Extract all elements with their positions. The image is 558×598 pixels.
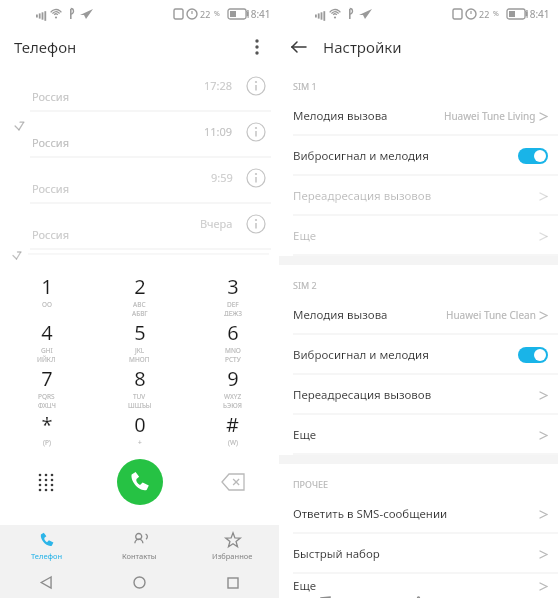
button[interactable]: Россия (0, 112, 279, 158)
button[interactable]: 5 (93, 316, 186, 362)
button[interactable]: Call details (243, 211, 269, 237)
button[interactable]: 8 (93, 362, 186, 408)
staticText: Мелодия вызова (293, 307, 388, 323)
staticText: Телефон (31, 551, 63, 561)
staticText: 11:09 (204, 124, 233, 139)
button[interactable]: Вибросигнал и мелодия (279, 136, 558, 176)
staticText: Ответить в SMS-сообщении (293, 506, 448, 522)
staticText: Вибросигнал и мелодия (293, 148, 429, 164)
button[interactable]: Back (283, 31, 315, 63)
staticText: Еще (293, 427, 317, 443)
button[interactable]: Call details (243, 73, 269, 99)
staticText: Россия (32, 227, 69, 242)
staticText: Россия (32, 135, 69, 150)
staticText: Настройки (323, 37, 402, 57)
button[interactable]: 9 (186, 362, 279, 408)
staticText: Еще (293, 228, 317, 244)
staticText: РСТУ (225, 355, 241, 362)
staticText: 0 (134, 411, 146, 438)
staticText: 1 (41, 273, 53, 300)
staticText: 17:28 (204, 78, 233, 93)
button[interactable]: Еще (279, 415, 558, 455)
staticText: JKL (135, 346, 145, 355)
staticText: 2 (134, 273, 146, 300)
button[interactable]: 1 (0, 270, 93, 316)
staticText: ОО (42, 300, 52, 309)
button[interactable]: 4 (0, 316, 93, 362)
staticText: Россия (32, 181, 69, 196)
staticText: 7 (41, 365, 53, 392)
button[interactable]: Toggle (518, 148, 548, 164)
staticText: Вчера (200, 216, 233, 231)
staticText: 4 (41, 319, 53, 346)
button[interactable]: Еще (279, 216, 558, 256)
staticText: 18:41 (524, 7, 550, 21)
button[interactable]: Call details (243, 119, 269, 145)
button[interactable]: Россия (0, 158, 279, 204)
button[interactable]: More options (245, 30, 279, 64)
staticText: 6 (227, 319, 239, 346)
button[interactable]: Быстрый набор (279, 534, 558, 574)
staticText: 9:59 (211, 170, 233, 185)
staticText: АБВГ (132, 309, 148, 316)
staticText: * (41, 411, 53, 438)
button[interactable]: Toggle (518, 347, 548, 363)
button[interactable]: * (0, 408, 93, 454)
button[interactable]: 6 (186, 316, 279, 362)
button[interactable]: Телефон (0, 525, 93, 567)
button[interactable]: Контакты (93, 525, 186, 567)
button[interactable]: Home (93, 567, 186, 598)
button[interactable]: Мелодия вызова (279, 295, 558, 335)
button[interactable]: Recents (186, 567, 279, 598)
button[interactable]: 7 (0, 362, 93, 408)
staticText: Вибросигнал и мелодия (293, 347, 429, 363)
staticText: Телефон (14, 37, 77, 57)
button[interactable]: Back (0, 567, 93, 598)
button[interactable]: 2 (93, 270, 186, 316)
staticText: ДЕЖЗ (224, 309, 242, 316)
button[interactable]: Переадресация вызовов (279, 176, 558, 216)
button[interactable]: Delete (186, 454, 279, 510)
button[interactable]: Вибросигнал и мелодия (279, 335, 558, 375)
staticText: % (214, 9, 220, 19)
button[interactable]: Россия (0, 204, 279, 250)
staticText: DEF (227, 300, 239, 309)
staticText: Переадресация вызовов (293, 387, 432, 403)
staticText: MNO (225, 346, 241, 355)
staticText: Быстрый набор (293, 546, 380, 562)
staticText: PQRS (38, 392, 55, 401)
staticText: ПРОЧЕЕ (293, 478, 328, 490)
staticText: Переадресация вызовов (293, 188, 432, 204)
button[interactable]: Избранное (186, 525, 279, 567)
button[interactable]: 0 (93, 408, 186, 454)
button[interactable]: Call (117, 459, 163, 505)
staticText: 22 (200, 8, 211, 20)
staticText: ФХЦЧ (38, 401, 56, 408)
staticText: SIM 2 (293, 279, 317, 291)
staticText: ABC (133, 300, 146, 309)
button[interactable]: Hide keypad (0, 454, 93, 510)
staticText: WXYZ (224, 392, 242, 401)
button[interactable]: Call details (243, 165, 269, 191)
button[interactable]: Россия (0, 66, 279, 112)
staticText: TUV (133, 392, 146, 401)
button[interactable]: Ответить в SMS-сообщении (279, 494, 558, 534)
button[interactable]: # (186, 408, 279, 454)
staticText: 18:41 (245, 7, 271, 21)
staticText: Россия (32, 89, 69, 104)
staticText: + (138, 438, 142, 447)
button[interactable]: Переадресация вызовов (279, 375, 558, 415)
staticText: МНОП (129, 355, 150, 362)
staticText: GHI (41, 346, 53, 355)
staticText: 5 (134, 319, 146, 346)
staticText: Еще (293, 578, 317, 594)
staticText: (W) (228, 438, 238, 447)
staticText: % (493, 9, 499, 19)
button[interactable]: Мелодия вызова (279, 96, 558, 136)
staticText: 9 (227, 365, 239, 392)
staticText: ИЙКЛ (37, 355, 56, 362)
button[interactable]: Еще (279, 574, 558, 598)
button[interactable]: 3 (186, 270, 279, 316)
staticText: ЬЭЮЯ (223, 401, 242, 408)
staticText: Huawei Tune Living (444, 109, 536, 123)
